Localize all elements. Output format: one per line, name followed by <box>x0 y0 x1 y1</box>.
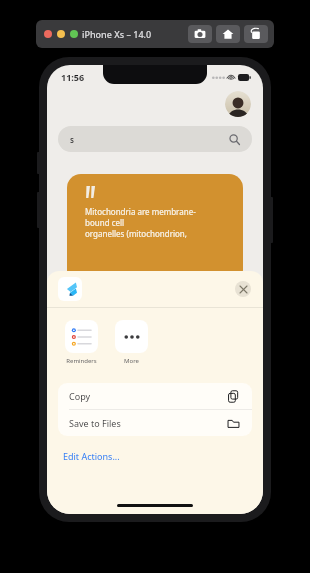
button[interactable]: Save to Files <box>58 410 252 436</box>
button[interactable]: Close <box>235 281 251 297</box>
staticText: Mitochondria are membrane- bound cell or… <box>85 206 196 239</box>
button[interactable]: App icon <box>58 277 82 301</box>
button[interactable]: s <box>58 126 252 152</box>
button[interactable]: Mitochondria are membrane- bound cell or… <box>67 174 243 284</box>
button[interactable]: Profile <box>225 91 251 117</box>
staticText: s <box>70 134 74 145</box>
button[interactable]: Minimise <box>57 30 65 38</box>
staticText: 11:56 <box>61 71 85 83</box>
button[interactable]: Edit Actions... <box>63 446 263 466</box>
button[interactable]: Close <box>44 30 52 38</box>
staticText: Reminders <box>66 357 97 365</box>
button[interactable]: Copy <box>58 383 252 409</box>
button[interactable]: Zoom <box>70 30 78 38</box>
button[interactable]: Home <box>216 25 240 43</box>
staticText: Edit Actions... <box>63 450 120 462</box>
button[interactable]: Rotate <box>244 25 268 43</box>
button[interactable]: Reminders <box>63 320 99 365</box>
staticText: iPhone Xs – 14.0 <box>82 28 152 40</box>
button[interactable]: Screenshot <box>188 25 212 43</box>
staticText: Copy <box>69 390 91 402</box>
button[interactable]: More <box>113 320 149 365</box>
staticText: More <box>124 357 139 365</box>
staticText: Save to Files <box>69 417 121 429</box>
